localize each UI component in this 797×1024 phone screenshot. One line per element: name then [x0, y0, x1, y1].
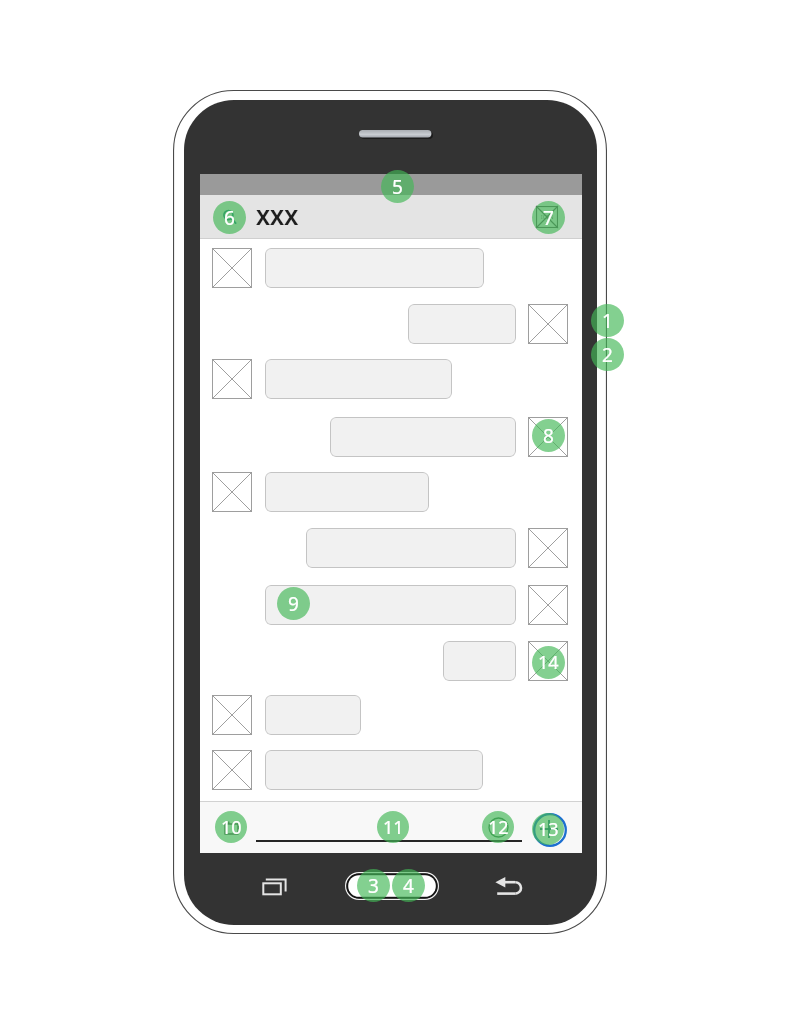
staticText: 5	[392, 174, 403, 200]
button[interactable]	[265, 750, 483, 790]
button[interactable]: Search	[217, 203, 243, 231]
staticText: 14	[538, 650, 559, 675]
button[interactable]: Home	[345, 872, 439, 900]
staticText: 3	[368, 873, 379, 899]
staticText: 6	[224, 205, 235, 231]
staticText: 8	[543, 423, 554, 449]
staticText: 7	[543, 205, 554, 231]
button[interactable]: Recent apps	[260, 876, 288, 898]
button[interactable]	[306, 528, 516, 568]
button[interactable]	[265, 359, 452, 399]
button[interactable]: Send	[533, 813, 567, 847]
button[interactable]: Menu	[532, 202, 562, 232]
staticText: 11	[383, 815, 404, 840]
button[interactable]	[265, 695, 361, 735]
button[interactable]	[265, 248, 484, 288]
button[interactable]: Emoji	[484, 813, 512, 841]
button[interactable]: Attach	[217, 813, 245, 841]
button[interactable]: Back	[494, 876, 522, 896]
button[interactable]	[443, 641, 516, 681]
staticText: XXX	[256, 203, 299, 232]
button[interactable]	[265, 585, 516, 625]
button[interactable]	[265, 472, 429, 512]
staticText: 10	[221, 815, 242, 840]
staticText: 4	[403, 873, 414, 899]
staticText: 2	[602, 342, 613, 368]
staticText: 1	[602, 308, 613, 334]
button[interactable]	[408, 304, 516, 344]
staticText: ICON	[541, 214, 554, 221]
staticText: 9	[288, 591, 299, 617]
button[interactable]	[330, 417, 516, 457]
staticText: 13	[538, 817, 559, 842]
staticText: 12	[488, 815, 509, 840]
